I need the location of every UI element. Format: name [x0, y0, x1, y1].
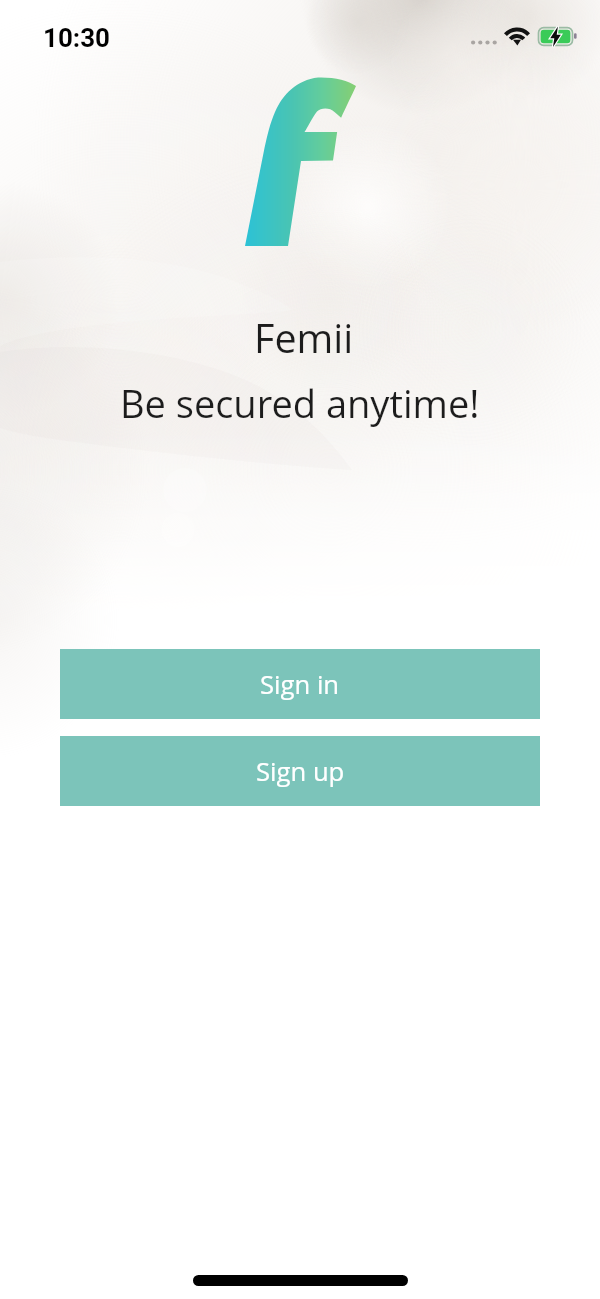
staticText: Be secured anytime!: [120, 377, 480, 429]
staticText: 10:30: [43, 23, 111, 53]
staticText: Sign up: [256, 754, 345, 789]
button[interactable]: Sign in: [60, 649, 540, 719]
other: Wi-Fi: [505, 26, 531, 48]
staticText: Sign in: [260, 667, 340, 702]
button[interactable]: Sign up: [60, 736, 540, 806]
other: Cellular signal: [470, 38, 498, 47]
staticText: Femii: [254, 311, 354, 365]
other: Battery charging: [538, 26, 578, 47]
